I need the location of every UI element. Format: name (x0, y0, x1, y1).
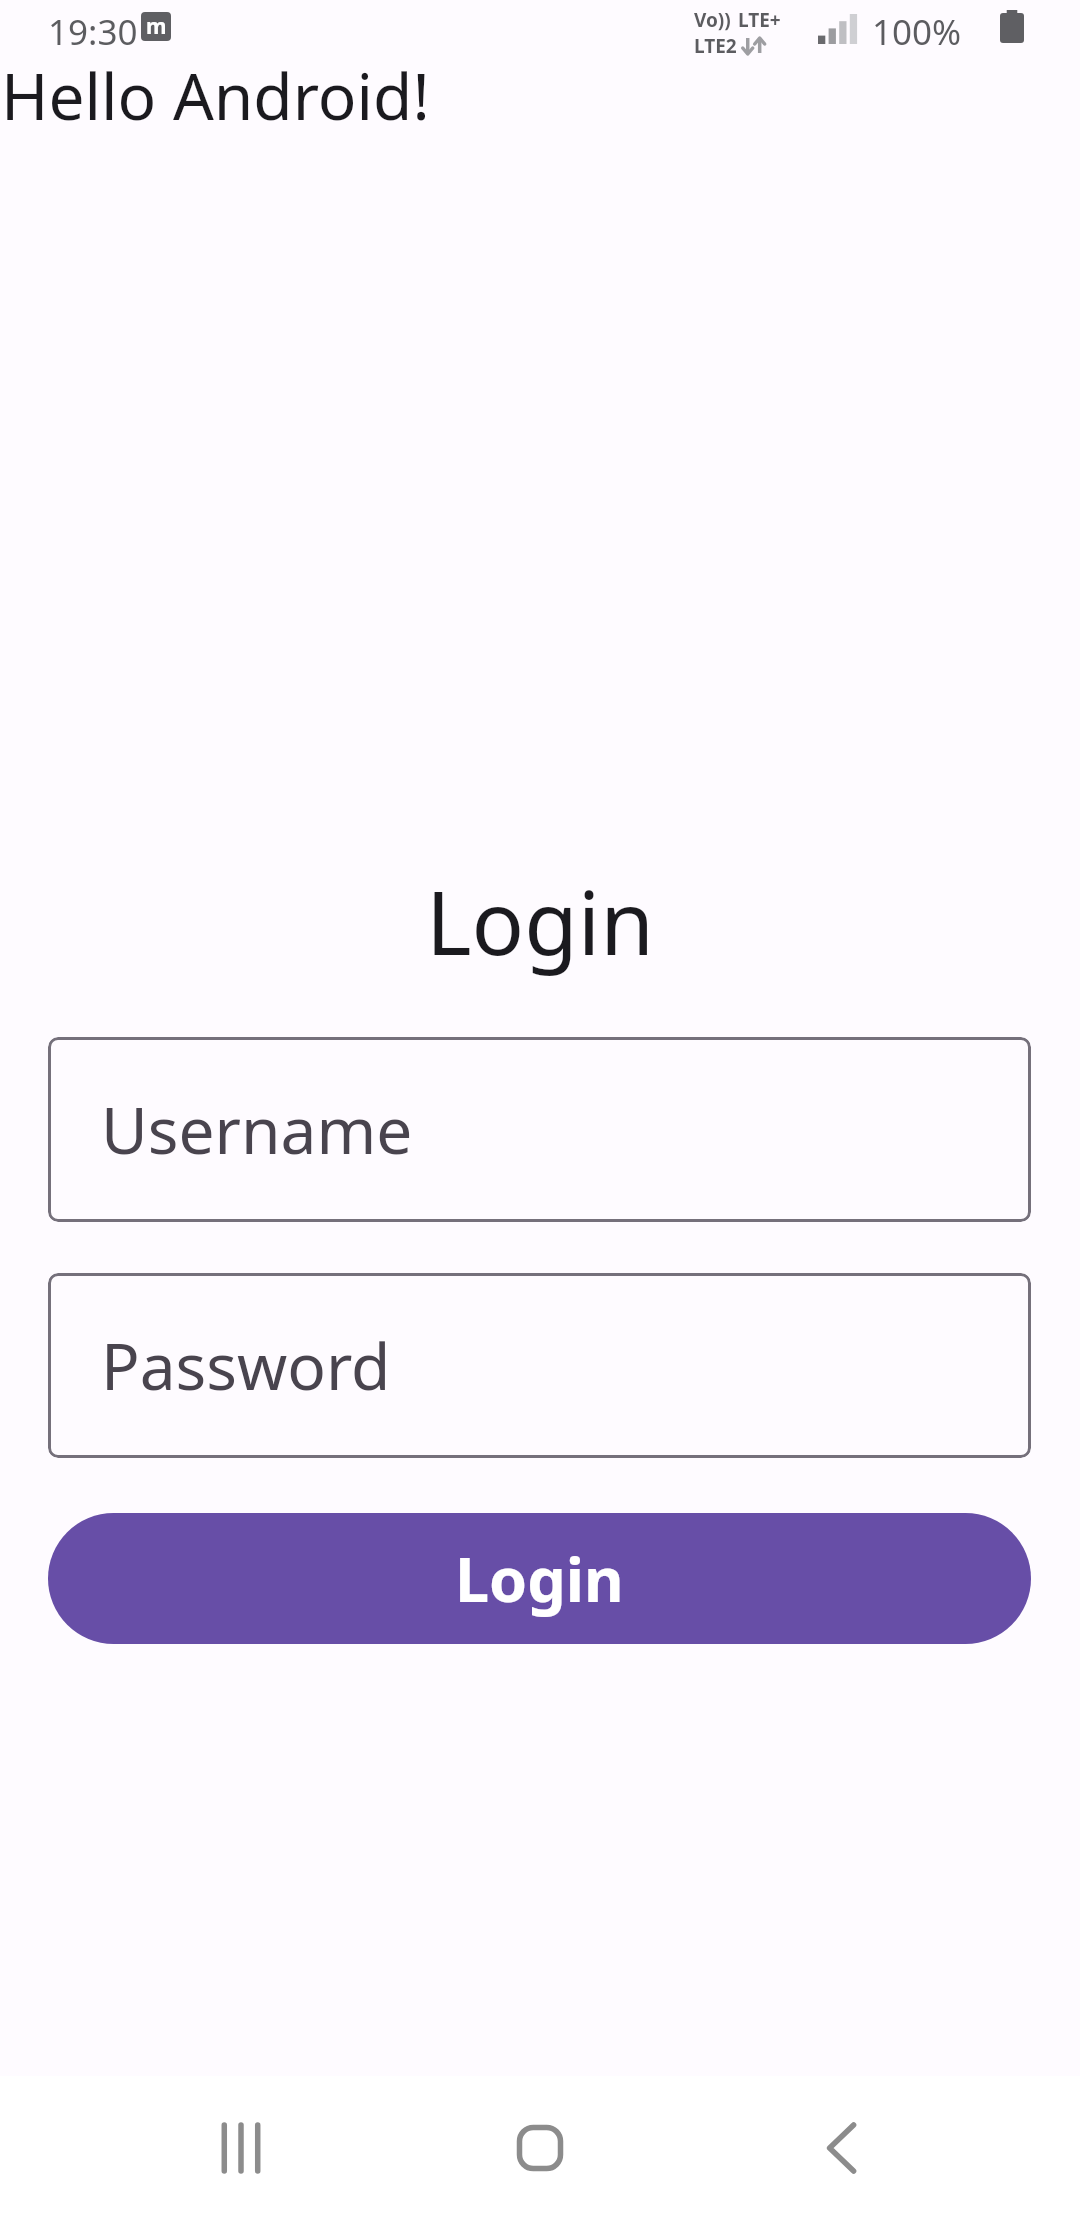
staticText: 19:30 (48, 8, 138, 56)
staticText: Password (101, 1322, 391, 1409)
button[interactable]: Password (48, 1273, 1031, 1458)
button[interactable]: Home (480, 2088, 600, 2208)
staticText: LTE2 (694, 33, 737, 59)
staticText: Login (426, 862, 654, 980)
staticText: Login (455, 1537, 624, 1620)
button[interactable]: Back (781, 2088, 901, 2208)
staticText: 100% (872, 8, 962, 56)
staticText: m (146, 12, 167, 41)
button[interactable]: Recent apps (181, 2088, 301, 2208)
button[interactable]: Login (48, 1513, 1031, 1644)
staticText: Vo)) (694, 7, 731, 33)
staticText: Username (101, 1086, 413, 1173)
staticText: Hello Android! (1, 52, 430, 139)
button[interactable]: Username (48, 1037, 1031, 1222)
staticText: LTE+ (738, 7, 781, 33)
